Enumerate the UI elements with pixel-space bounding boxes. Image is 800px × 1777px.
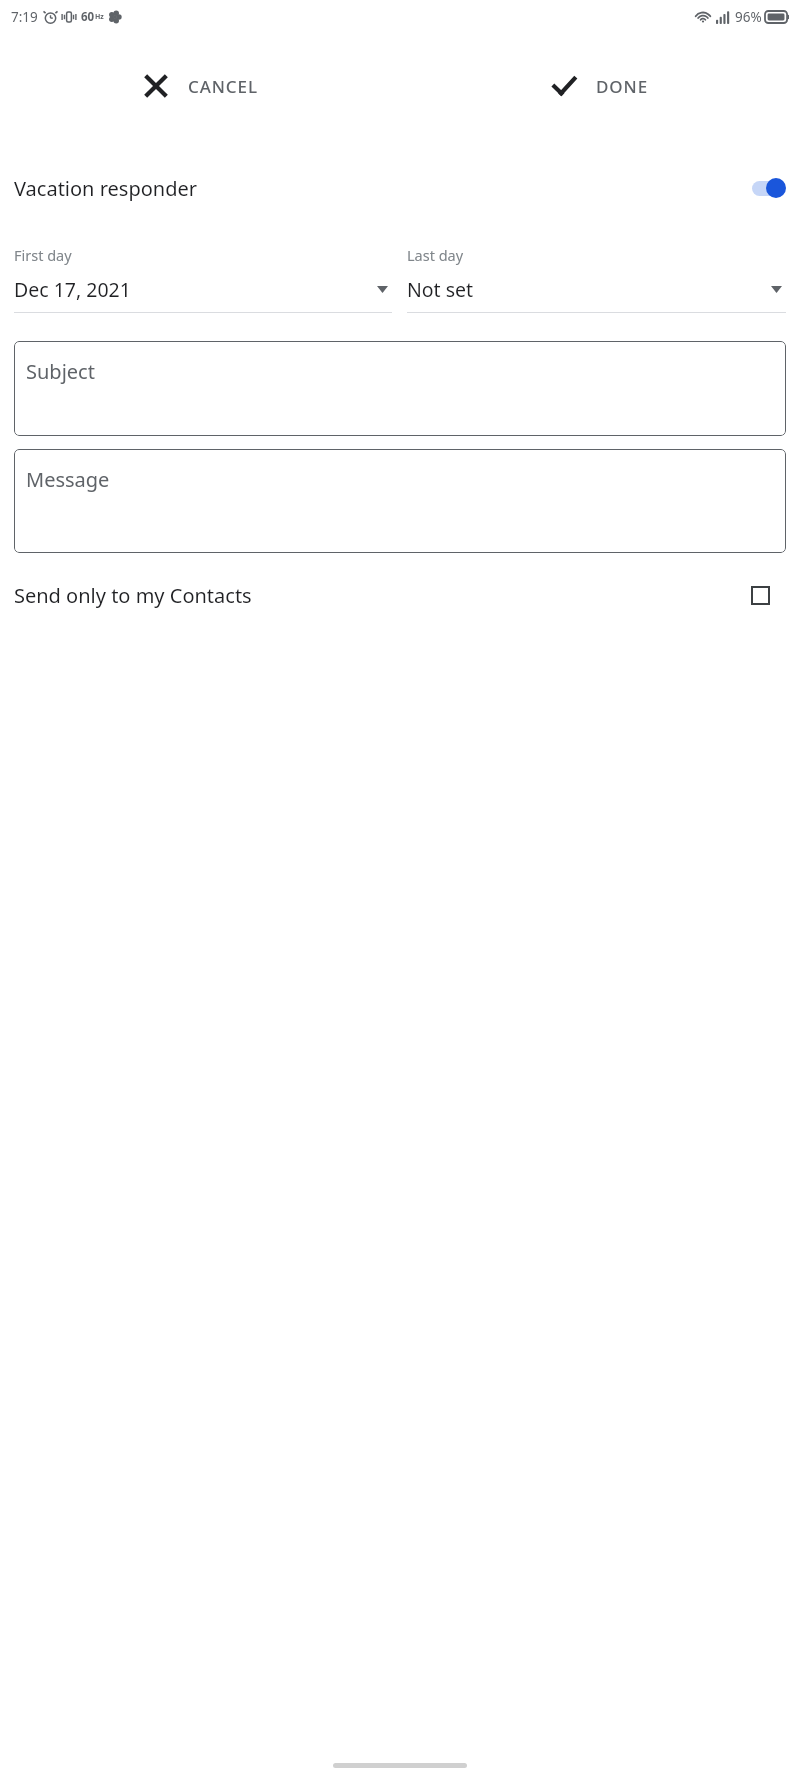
staticText: Hz [95, 12, 104, 22]
staticText: 60 [81, 9, 95, 25]
button[interactable]: DONE [400, 73, 800, 99]
button[interactable]: Subject [14, 341, 786, 436]
staticText: Message [26, 466, 110, 493]
staticText: Last day [407, 245, 464, 265]
staticText: First day [14, 245, 72, 265]
staticText: Vacation responder [14, 175, 197, 202]
staticText: Subject [26, 358, 95, 385]
staticText: DONE [596, 75, 649, 98]
button[interactable]: First day [14, 245, 392, 313]
button[interactable]: Vacation responder [0, 162, 800, 214]
staticText: 7:19 [11, 8, 38, 26]
button[interactable]: Last day [407, 245, 786, 313]
button[interactable]: CANCEL [0, 73, 400, 99]
staticText: CANCEL [188, 75, 258, 98]
button[interactable]: Send only to my Contacts [0, 570, 800, 620]
other: Open First day picker [377, 286, 388, 293]
other: Open Last day picker [771, 286, 782, 293]
staticText: Dec 17, 2021 [14, 276, 131, 303]
staticText: Send only to my Contacts [14, 582, 252, 609]
staticText: 96% [735, 8, 762, 26]
button[interactable]: Message [14, 449, 786, 553]
staticText: Not set [407, 276, 474, 303]
